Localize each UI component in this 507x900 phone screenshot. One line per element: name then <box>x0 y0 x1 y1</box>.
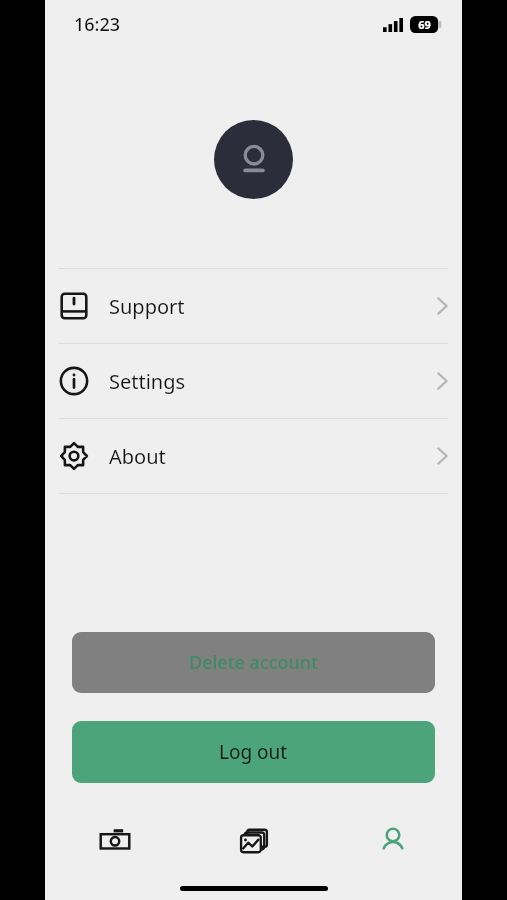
staticText: Delete account <box>189 650 319 675</box>
button[interactable]: Camera <box>45 815 184 867</box>
button[interactable]: Log out <box>72 721 435 783</box>
button[interactable]: Settings <box>45 344 462 418</box>
staticText: Support <box>109 293 185 320</box>
button[interactable]: Delete account <box>72 632 435 693</box>
button[interactable]: Gallery <box>184 815 323 867</box>
button[interactable]: Support <box>45 269 462 343</box>
button[interactable]: About <box>45 419 462 493</box>
staticText: 69 <box>418 17 431 32</box>
staticText: Settings <box>109 368 186 395</box>
button[interactable]: Profile <box>323 815 462 867</box>
staticText: 16:23 <box>74 12 121 37</box>
staticText: Log out <box>219 739 288 765</box>
staticText: About <box>109 443 166 470</box>
button[interactable]: Profile photo <box>214 120 293 199</box>
